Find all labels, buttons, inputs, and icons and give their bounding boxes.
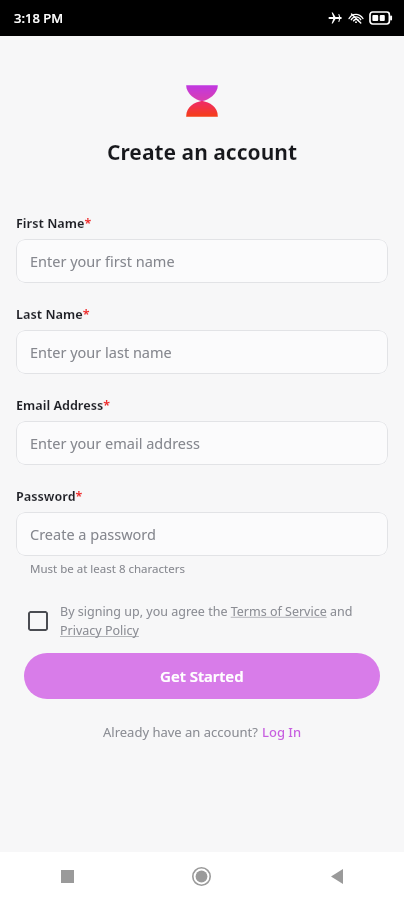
staticText: First Name* bbox=[16, 215, 92, 232]
staticText: Email Address* bbox=[16, 397, 110, 414]
button[interactable]: Enter your first name bbox=[16, 239, 388, 283]
button[interactable]: Enter your last name bbox=[16, 330, 388, 374]
button[interactable]: Recent apps bbox=[0, 852, 134, 900]
other: Agree to terms checkbox bbox=[28, 611, 48, 631]
staticText: Log In bbox=[262, 723, 302, 741]
staticText: Enter your email address bbox=[30, 433, 200, 453]
staticText: Must be at least 8 characters bbox=[30, 561, 185, 577]
staticText: Enter your first name bbox=[30, 251, 175, 271]
staticText: Password* bbox=[16, 488, 83, 505]
button[interactable]: Log In bbox=[262, 723, 302, 741]
staticText: Get Started bbox=[160, 666, 244, 686]
staticText: Enter your last name bbox=[30, 342, 172, 362]
button[interactable]: Agree to terms checkbox bbox=[28, 603, 384, 639]
staticText: 3:18 PM bbox=[14, 9, 64, 27]
button[interactable]: Back bbox=[269, 852, 404, 900]
button[interactable]: Get Started bbox=[24, 653, 380, 699]
staticText: Last Name* bbox=[16, 306, 90, 323]
staticText: By signing up, you agree the Terms of Se… bbox=[60, 603, 384, 639]
staticText: Already have an account? bbox=[103, 723, 262, 741]
button[interactable]: Create a password bbox=[16, 512, 388, 556]
button[interactable]: Home bbox=[134, 852, 269, 900]
button[interactable]: Enter your email address bbox=[16, 421, 388, 465]
staticText: Create a password bbox=[30, 524, 156, 544]
staticText: Create an account bbox=[0, 138, 404, 167]
